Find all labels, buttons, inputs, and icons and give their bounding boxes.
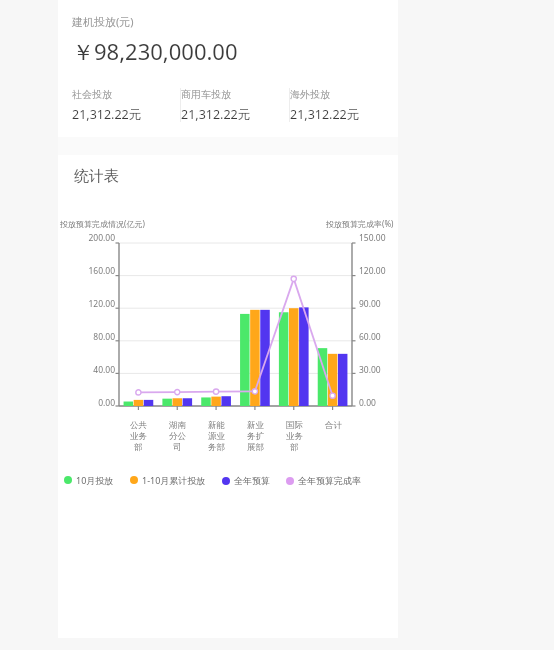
staticText: 90.00	[359, 298, 381, 310]
staticText: 21,312.22元	[290, 106, 360, 123]
staticText: 150.00	[359, 232, 386, 244]
staticText: 务扩	[247, 431, 264, 442]
staticText: 120.00	[88, 298, 115, 310]
staticText: 展部	[247, 442, 264, 453]
staticText: 合计	[325, 420, 342, 431]
staticText: 统计表	[74, 167, 119, 186]
button[interactable]: 1-10月累计投放	[130, 474, 206, 486]
staticText: 全年预算完成率	[298, 475, 361, 486]
staticText: 分公	[169, 431, 186, 442]
staticText: 湖南	[169, 420, 186, 431]
staticText: 业务	[130, 431, 147, 442]
staticText: 商用车投放	[181, 88, 231, 101]
staticText: 160.00	[88, 265, 115, 277]
staticText: 投放预算完成情况(亿元)	[60, 218, 145, 229]
staticText: 80.00	[93, 331, 115, 343]
staticText: 建机投放(元)	[72, 14, 134, 29]
staticText: 21,312.22元	[181, 106, 251, 123]
staticText: 国际	[286, 420, 303, 431]
button[interactable]: 商用车投放	[181, 88, 289, 123]
staticText: 公共	[130, 420, 147, 431]
staticText: 10月投放	[76, 474, 114, 486]
staticText: 新业	[247, 420, 264, 431]
staticText: 0.00	[359, 397, 376, 409]
staticText: 社会投放	[72, 88, 112, 101]
staticText: 源业	[208, 431, 225, 442]
staticText: 业务	[286, 431, 303, 442]
button[interactable]: 海外投放	[290, 88, 380, 123]
button[interactable]: 10月投放	[64, 474, 114, 486]
staticText: 120.00	[359, 265, 386, 277]
staticText: 0.00	[98, 397, 115, 409]
staticText: 21,312.22元	[72, 106, 142, 123]
staticText: 海外投放	[290, 88, 330, 101]
staticText: 200.00	[88, 232, 115, 244]
staticText: 务部	[208, 442, 225, 453]
button[interactable]: 全年预算完成率	[286, 475, 361, 486]
staticText: 全年预算	[234, 475, 270, 486]
staticText: 部	[290, 442, 299, 453]
button[interactable]: 统计表柱状图	[58, 233, 398, 438]
staticText: 1-10月累计投放	[142, 474, 206, 486]
staticText: 40.00	[93, 364, 115, 376]
button[interactable]: 全年预算	[222, 475, 270, 486]
staticText: ￥98,230,000.00	[72, 36, 238, 66]
staticText: 60.00	[359, 331, 381, 343]
staticText: 部	[134, 442, 143, 453]
staticText: 30.00	[359, 364, 381, 376]
button[interactable]: 建机投放(元)	[58, 0, 398, 137]
staticText: 新能	[208, 420, 225, 431]
button[interactable]: 社会投放	[72, 88, 180, 123]
staticText: 投放预算完成率(%)	[326, 218, 394, 229]
staticText: 司	[173, 442, 182, 453]
